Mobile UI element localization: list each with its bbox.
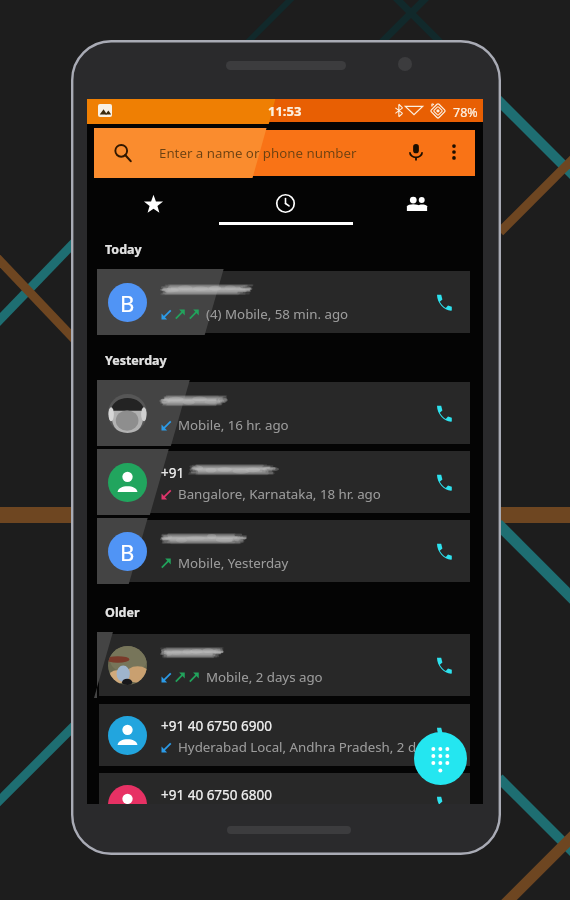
other: Call [433,472,453,492]
button[interactable]: Dialpad [414,732,467,785]
other: Search [114,144,133,163]
button[interactable]: +91 40 6750 6800 [99,773,470,804]
staticText: B [120,537,135,567]
other: Call [433,794,453,804]
other: Call [433,655,453,675]
other: Voice search [407,143,425,161]
staticText: Mobile, Yesterday [178,554,289,572]
button[interactable]: +91 [99,451,470,513]
other: Call [433,403,453,423]
staticText: 78% [453,104,478,121]
button[interactable]: Contacts [351,183,483,225]
button[interactable]: +91 40 6750 6900 [99,704,470,766]
other: Call [433,725,453,745]
staticText: Enter a name or phone number [159,144,357,162]
button[interactable]: B [99,520,470,582]
button[interactable]: Favorites [87,183,219,225]
staticText: Hyderabad Local, Andhra Pradesh, 2 d… [178,738,427,756]
button[interactable]: B [99,271,470,333]
button[interactable]: Search [96,130,475,176]
staticText: Bangalore, Karnataka, 18 hr. ago [178,485,381,503]
staticText: B [120,288,135,318]
button[interactable]: Mobile, 16 hr. ago [99,382,470,444]
staticText: 11:53 [268,102,302,120]
button[interactable]: Recents [219,183,351,225]
staticText: Today [105,241,142,258]
other: Call [433,541,453,561]
staticText: Yesterday [105,352,167,369]
staticText: Mobile, 2 days ago [206,668,323,686]
staticText: +91 40 6750 6800 [161,786,272,804]
staticText: (4) Mobile, 58 min. ago [206,305,349,323]
staticText: +91 40 6750 6900 [161,717,272,735]
staticText: Mobile, 16 hr. ago [178,416,289,434]
staticText: Older [105,604,140,621]
staticText: +91 [161,464,185,482]
other: Call [433,292,453,312]
button[interactable]: Mobile, 2 days ago [99,634,470,696]
other: More options [446,144,462,160]
